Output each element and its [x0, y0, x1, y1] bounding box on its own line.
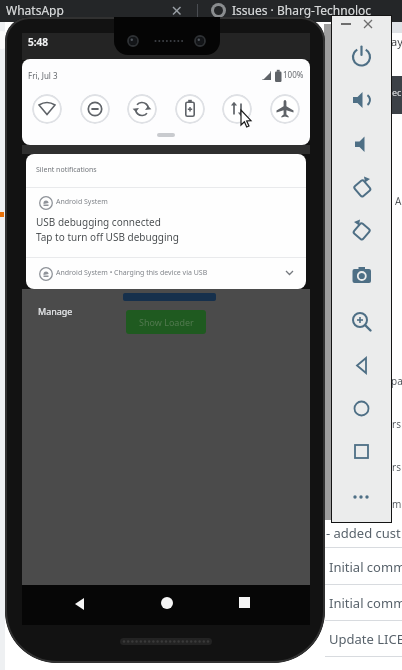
button[interactable] — [350, 218, 374, 242]
staticText: Initial comm — [329, 594, 402, 612]
button[interactable] — [80, 94, 110, 124]
staticText: 5:48 — [28, 35, 48, 49]
staticText: Show Loader — [139, 316, 194, 328]
staticText: ay — [391, 34, 402, 49]
button[interactable]: Manage — [32, 302, 78, 320]
staticText: - added cust — [326, 524, 401, 542]
button[interactable] — [222, 94, 252, 124]
staticText: Issues · Bharg-Technoloc — [232, 2, 372, 18]
staticText: pa — [391, 374, 402, 388]
staticText: USB debugging connected — [36, 215, 161, 229]
button[interactable] — [171, 5, 183, 17]
button[interactable] — [350, 440, 374, 464]
button[interactable] — [363, 19, 373, 29]
button[interactable] — [350, 485, 374, 509]
staticText: Tap to turn off USB debugging — [36, 230, 179, 244]
button[interactable]: Android System • Charging this device vi… — [26, 258, 306, 289]
staticText: rs — [392, 417, 401, 431]
staticText: Update LICE — [329, 630, 402, 648]
button[interactable]: Android System — [26, 188, 306, 257]
staticText: Fri, Jul 3 — [28, 70, 58, 81]
button[interactable] — [350, 397, 374, 421]
staticText: Manage — [38, 305, 73, 317]
button[interactable]: Show Loader — [126, 310, 206, 334]
staticText: A — [395, 194, 402, 208]
button[interactable] — [175, 94, 205, 124]
staticText: Android System — [56, 197, 108, 207]
staticText: rs — [392, 460, 401, 474]
staticText: Silent notifications — [36, 165, 97, 175]
button[interactable] — [72, 596, 88, 612]
button[interactable] — [350, 132, 374, 156]
button[interactable] — [350, 88, 374, 112]
button[interactable] — [350, 263, 374, 287]
staticText: 100% — [283, 69, 304, 80]
button[interactable] — [270, 94, 300, 124]
button[interactable] — [350, 45, 374, 69]
staticText: WhatsApp — [6, 2, 64, 18]
staticText: ec — [392, 86, 402, 98]
staticText: Android System • Charging this device vi… — [56, 268, 208, 278]
button[interactable] — [32, 94, 62, 124]
staticText: m — [392, 497, 402, 511]
button[interactable] — [350, 175, 374, 199]
button[interactable] — [161, 597, 173, 609]
staticText: Initial comm — [329, 558, 402, 576]
button[interactable] — [350, 310, 374, 334]
button[interactable]: WhatsApp — [0, 0, 190, 22]
button[interactable] — [350, 354, 374, 378]
button[interactable] — [127, 94, 157, 124]
